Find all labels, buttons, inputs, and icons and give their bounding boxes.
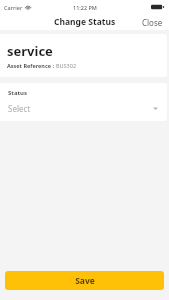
staticText: Change Status	[54, 16, 116, 28]
staticText: Status	[8, 89, 28, 97]
button[interactable]: Close	[136, 15, 169, 30]
staticText: BUS302	[56, 62, 77, 69]
button[interactable]: Save	[5, 271, 164, 290]
button[interactable]: service	[0, 34, 167, 77]
staticText: Save	[75, 275, 95, 287]
staticText: Close	[142, 17, 163, 28]
other: Open status dropdown	[152, 105, 159, 112]
staticText: Asset Reference :	[7, 62, 56, 69]
staticText: 11:22 PM	[73, 4, 97, 11]
staticText: Carrier	[4, 4, 23, 11]
button[interactable]: Status	[0, 83, 167, 121]
staticText: service	[7, 42, 53, 60]
staticText: Select	[8, 103, 31, 114]
